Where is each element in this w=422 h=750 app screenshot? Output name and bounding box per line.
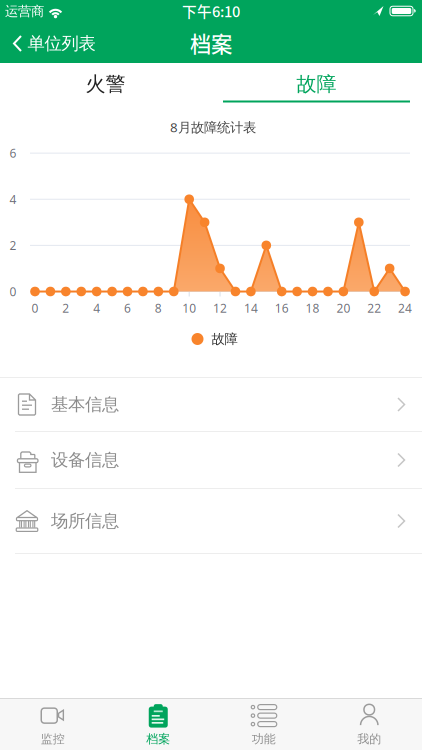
staticText: 运营商 [5,3,44,19]
staticText: 4 [93,300,100,316]
staticText: 22 [367,300,381,316]
button[interactable]: 档案 [105,699,211,750]
button[interactable]: 场所信息 [0,489,422,553]
button[interactable]: 单位列表 [12,23,95,64]
staticText: 16 [275,300,289,316]
button[interactable]: 监控 [0,699,105,750]
staticText: 18 [306,300,320,316]
staticText: 故障 [211,331,237,347]
button[interactable]: 基本信息 [0,378,422,431]
staticText: 8 [155,300,162,316]
button[interactable]: 故障 [211,64,422,104]
staticText: 8月故障统计表 [170,118,256,136]
staticText: 0 [31,300,38,316]
staticText: 我的 [357,732,381,746]
staticText: 档案 [190,28,232,58]
staticText: 基本信息 [51,394,119,415]
staticText: 6 [124,300,131,316]
staticText: 4 [9,191,16,207]
staticText: 场所信息 [51,510,119,532]
staticText: 设备信息 [51,449,119,471]
staticText: 20 [336,300,350,316]
button[interactable]: 我的 [316,699,422,750]
staticText: 监控 [41,732,65,746]
staticText: 下午6:10 [182,0,240,21]
staticText: 故障 [296,72,336,96]
staticText: 单位列表 [27,33,95,54]
staticText: 2 [62,300,69,316]
button[interactable]: 功能 [211,699,316,750]
staticText: 14 [244,300,258,316]
staticText: 6 [9,145,16,161]
staticText: 10 [182,300,196,316]
staticText: 0 [9,283,16,299]
staticText: 功能 [252,732,276,746]
staticText: 2 [9,237,16,253]
staticText: 12 [213,300,227,316]
button[interactable]: 火警 [0,64,211,104]
button[interactable]: 设备信息 [0,432,422,488]
staticText: 火警 [85,72,125,96]
staticText: 档案 [146,732,170,746]
staticText: 24 [398,300,412,316]
